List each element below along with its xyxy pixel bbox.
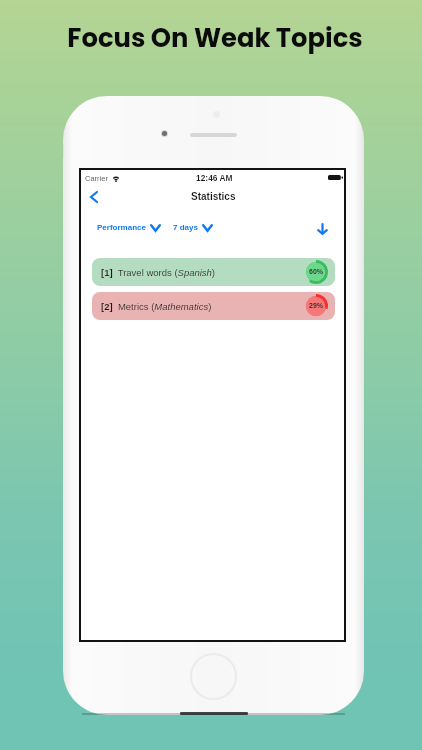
button[interactable]: Download (314, 221, 330, 237)
staticText: Performance (97, 223, 146, 232)
staticText: 29% (309, 302, 324, 310)
button[interactable]: [2] Metrics (Mathematics) (92, 292, 335, 320)
button[interactable]: [1] Travel words (Spanish) (92, 258, 335, 286)
button[interactable]: 7 days (173, 221, 213, 234)
staticText: Statistics (191, 191, 236, 202)
staticText: 7 days (173, 223, 198, 232)
staticText: 12:46 AM (196, 173, 233, 182)
staticText: Focus On Weak Topics (4, 20, 422, 56)
staticText: Carrier (85, 174, 108, 182)
button[interactable]: Performance (97, 221, 161, 234)
staticText: 60% (309, 268, 324, 276)
staticText: [2] Metrics (Mathematics) (101, 301, 212, 312)
button[interactable]: Back (85, 188, 102, 205)
staticText: [1] Travel words (Spanish) (101, 267, 216, 278)
